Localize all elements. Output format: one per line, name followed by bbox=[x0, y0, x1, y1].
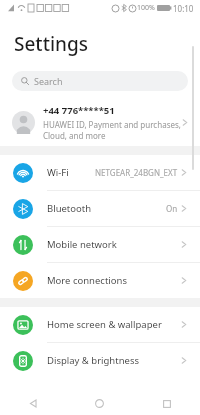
button[interactable]: Home bbox=[66, 392, 133, 415]
button[interactable]: Mobile network bbox=[0, 227, 200, 262]
staticText: +44 776*****51 bbox=[43, 104, 115, 117]
staticText: Home screen & wallpaper bbox=[47, 318, 162, 331]
staticText: 10:10 bbox=[173, 3, 194, 14]
staticText: 100% bbox=[137, 3, 155, 13]
button[interactable]: Wi-Fi bbox=[0, 155, 200, 190]
button[interactable]: More connections bbox=[0, 263, 200, 298]
button[interactable]: +44 776*****51 bbox=[0, 98, 200, 146]
staticText: NETGEAR_24BGN_EXT bbox=[95, 167, 178, 178]
button[interactable]: Bluetooth bbox=[0, 191, 200, 226]
button[interactable]: Display & brightness bbox=[0, 343, 200, 378]
staticText: Cloud, and more bbox=[43, 130, 106, 141]
staticText: Bluetooth bbox=[47, 202, 92, 215]
staticText: Settings bbox=[14, 31, 88, 57]
staticText: HUAWEI ID, Payment and purchases, bbox=[43, 119, 181, 130]
button[interactable]: Search bbox=[12, 71, 188, 91]
staticText: On bbox=[166, 203, 178, 214]
staticText: Search bbox=[34, 75, 63, 87]
staticText: Mobile network bbox=[47, 238, 117, 251]
staticText: Wi-Fi bbox=[47, 166, 69, 179]
button[interactable]: Back bbox=[0, 392, 66, 415]
button[interactable]: Recents bbox=[133, 392, 200, 415]
button[interactable]: Home screen & wallpaper bbox=[0, 307, 200, 342]
staticText: More connections bbox=[47, 274, 127, 287]
staticText: Display & brightness bbox=[47, 354, 139, 367]
